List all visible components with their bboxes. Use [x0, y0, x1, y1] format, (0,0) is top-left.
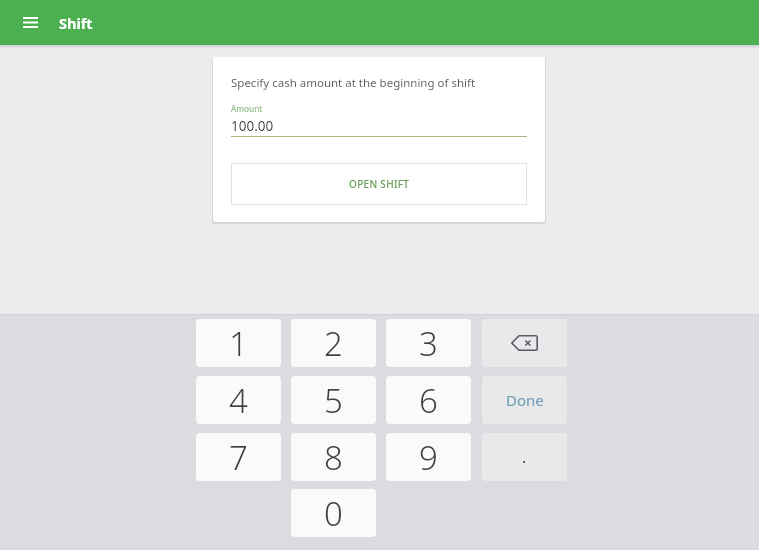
staticText: 100.00 — [231, 117, 274, 135]
button[interactable]: 0 — [291, 489, 376, 537]
button[interactable]: 6 — [386, 376, 471, 424]
staticText: 8 — [324, 435, 343, 480]
staticText: Shift — [59, 13, 93, 33]
button[interactable]: Open navigation menu — [8, 0, 53, 45]
button[interactable]: Backspace — [482, 319, 567, 367]
staticText: Done — [506, 390, 544, 410]
staticText: OPEN SHIFT — [349, 177, 410, 191]
staticText: Specify cash amount at the beginning of … — [231, 75, 476, 91]
button[interactable]: 4 — [196, 376, 281, 424]
staticText: 5 — [324, 378, 343, 423]
staticText: 7 — [229, 435, 248, 480]
button[interactable]: Done — [482, 376, 567, 424]
staticText: 2 — [324, 321, 343, 366]
staticText: 0 — [324, 491, 343, 536]
staticText: Amount — [231, 103, 263, 114]
staticText: 4 — [229, 378, 248, 423]
button[interactable]: 7 — [196, 433, 281, 481]
button[interactable]: . — [482, 433, 567, 481]
staticText: . — [522, 446, 527, 468]
staticText: 9 — [419, 435, 438, 480]
button[interactable]: 2 — [291, 319, 376, 367]
staticText: 6 — [419, 378, 438, 423]
staticText: 1 — [229, 321, 248, 366]
button[interactable]: 1 — [196, 319, 281, 367]
button[interactable]: 3 — [386, 319, 471, 367]
staticText: 3 — [419, 321, 438, 366]
button[interactable]: 5 — [291, 376, 376, 424]
button[interactable]: 8 — [291, 433, 376, 481]
button[interactable]: 9 — [386, 433, 471, 481]
button[interactable]: OPEN SHIFT — [231, 163, 527, 205]
